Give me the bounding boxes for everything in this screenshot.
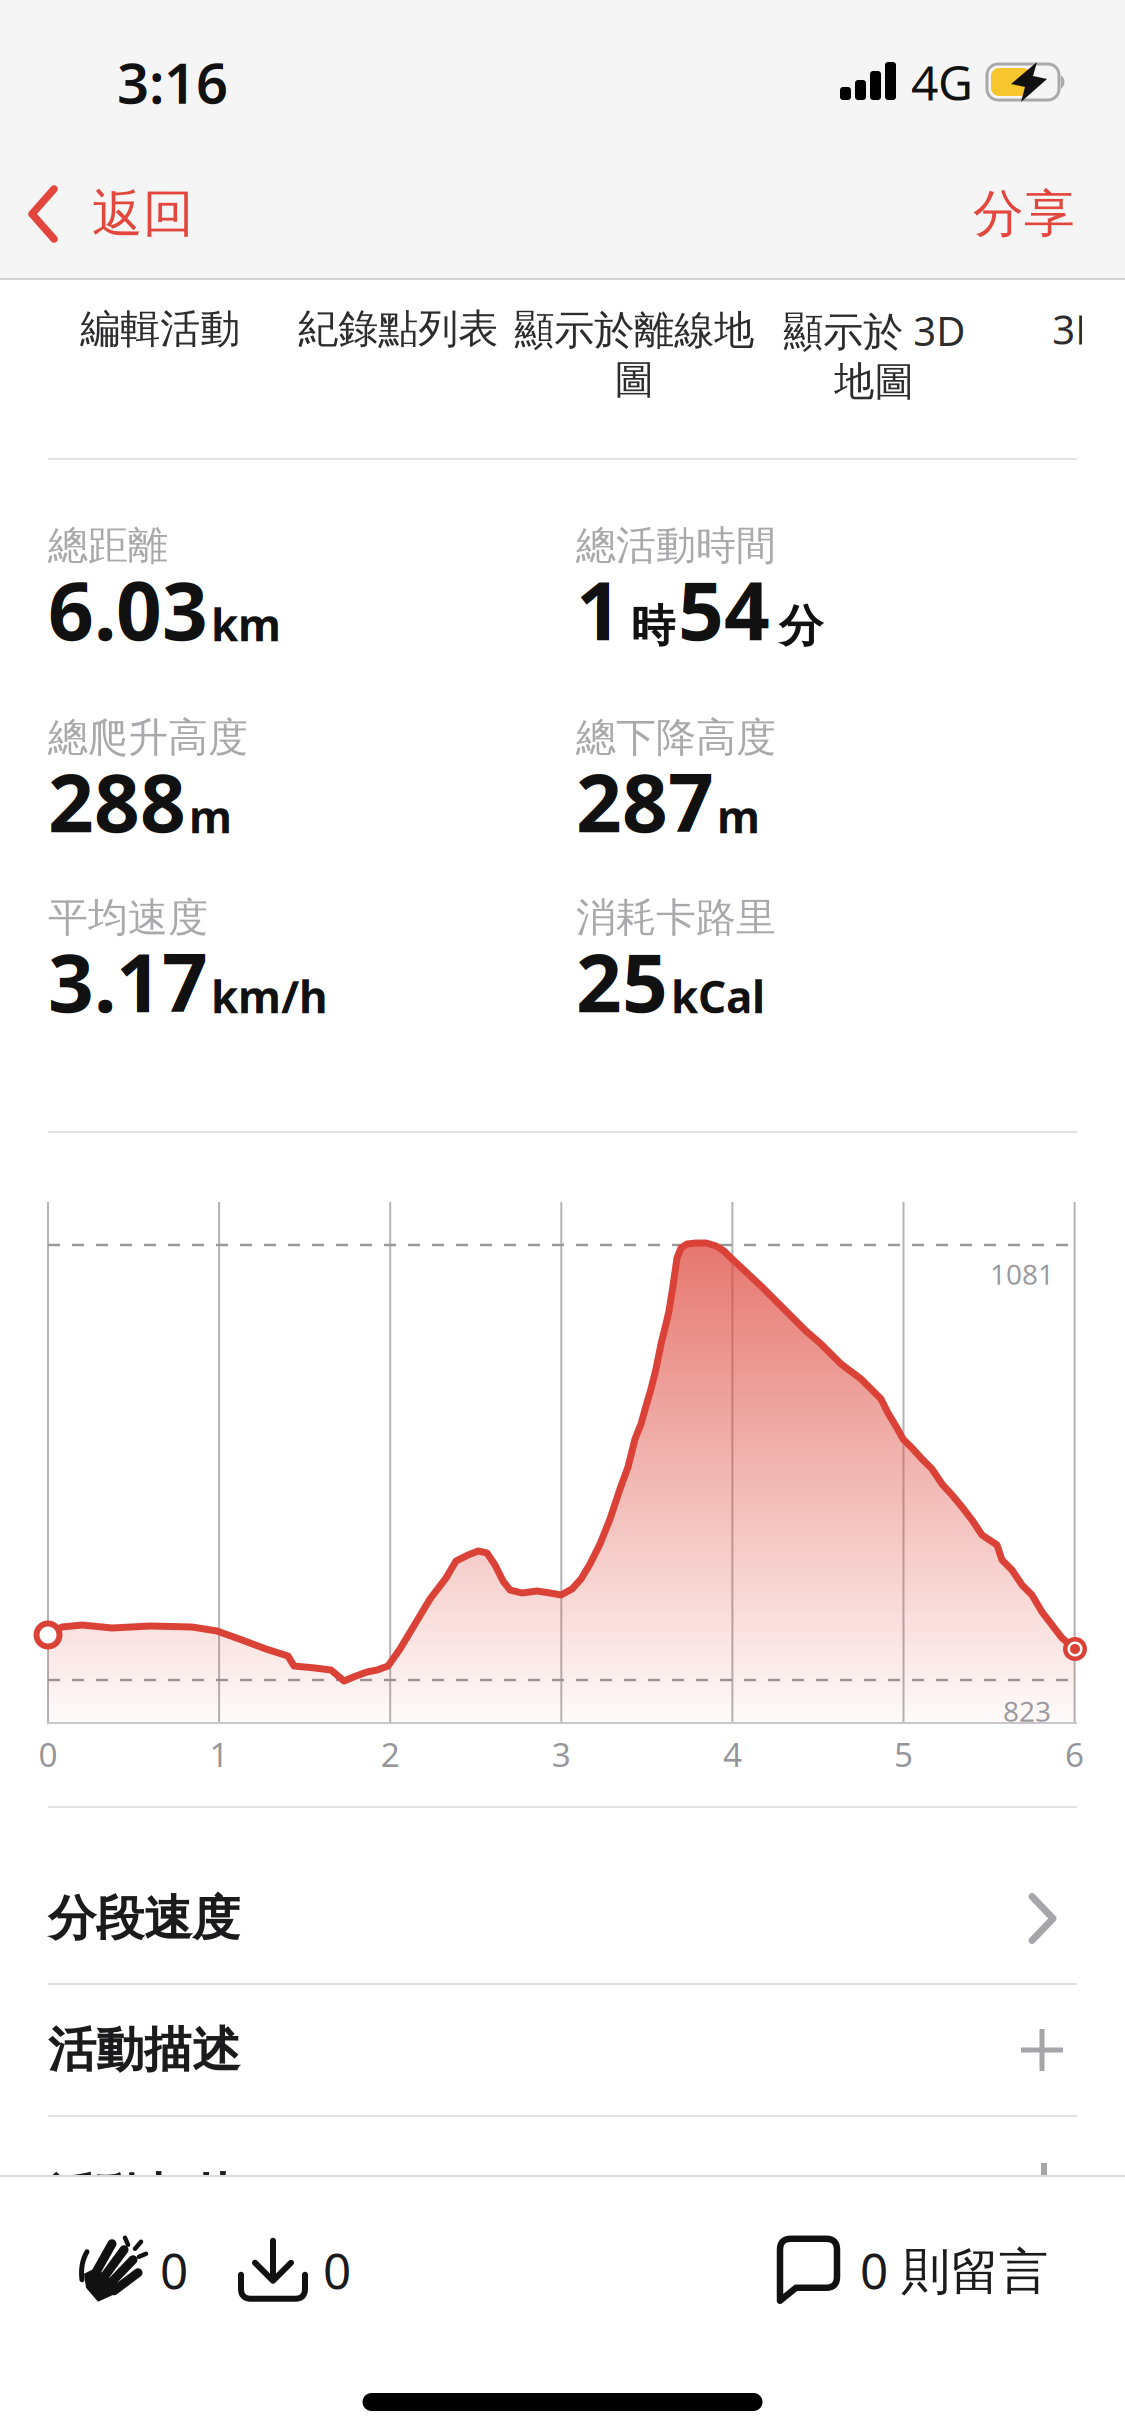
staticText: 3D飛覽	[1052, 302, 1125, 356]
staticText: 1081	[990, 1255, 1054, 1293]
staticText: 總爬升高度	[48, 713, 248, 762]
staticText: 消耗卡路里	[576, 893, 776, 942]
staticText: 分	[779, 599, 823, 653]
staticText: 活動描述	[48, 2020, 240, 2079]
staticText: 總距離	[48, 521, 168, 570]
staticText: 6	[1065, 1732, 1084, 1776]
staticText: 編輯活動	[80, 304, 240, 353]
staticText: 活動相片	[48, 2167, 240, 2226]
staticText: 287	[576, 748, 714, 854]
staticText: 4	[723, 1732, 742, 1776]
staticText: km/h	[211, 967, 328, 1025]
staticText: 平均速度	[48, 893, 208, 942]
staticText: 0	[160, 2237, 188, 2302]
button[interactable]: 顯示於離線地 圖	[514, 306, 754, 404]
staticText: 4G	[911, 50, 973, 114]
staticText: 總下降高度	[576, 713, 776, 762]
button[interactable]: 留言	[777, 2237, 1125, 2302]
staticText: 顯示於 3D 地圖	[783, 304, 965, 406]
staticText: 分享	[973, 183, 1075, 245]
staticText: 分段速度	[48, 1889, 240, 1948]
staticText: 823	[1003, 1692, 1051, 1730]
staticText: 5	[894, 1732, 913, 1776]
button[interactable]: 下載	[239, 2237, 351, 2302]
button[interactable]: 返回	[0, 183, 194, 245]
button[interactable]: 3D飛覽	[1052, 302, 1125, 356]
staticText: 1	[576, 556, 622, 662]
staticText: 0	[323, 2237, 351, 2302]
staticText: 3.17	[48, 928, 208, 1034]
staticText: 紀錄點列表	[298, 304, 498, 353]
staticText: 288	[48, 748, 186, 854]
button[interactable]: 分享	[973, 183, 1125, 245]
staticText: 25	[576, 928, 668, 1034]
button[interactable]: 鼓掌	[80, 2237, 188, 2302]
staticText: 2	[381, 1732, 400, 1776]
button[interactable]: 活動描述	[0, 1985, 1125, 2115]
staticText: m	[189, 787, 232, 845]
button[interactable]: 編輯活動	[80, 304, 240, 353]
staticText: km	[211, 595, 281, 653]
staticText: 返回	[92, 183, 194, 245]
staticText: 顯示於離線地 圖	[514, 306, 754, 404]
button[interactable]: 顯示於 3D 地圖	[783, 304, 965, 406]
button[interactable]: 分段速度	[0, 1808, 1125, 1983]
staticText: 0	[38, 1732, 57, 1776]
staticText: 54	[678, 556, 770, 662]
staticText: 3	[552, 1732, 571, 1776]
staticText: 1	[210, 1732, 229, 1776]
staticText: 時	[631, 599, 675, 653]
staticText: 6.03	[48, 556, 208, 662]
staticText: 3:16	[117, 45, 228, 119]
staticText: 總活動時間	[576, 521, 776, 570]
staticText: m	[717, 787, 760, 845]
staticText: kCal	[671, 967, 765, 1025]
button[interactable]: 紀錄點列表	[298, 304, 498, 353]
staticText: 0 則留言	[860, 2237, 1048, 2302]
